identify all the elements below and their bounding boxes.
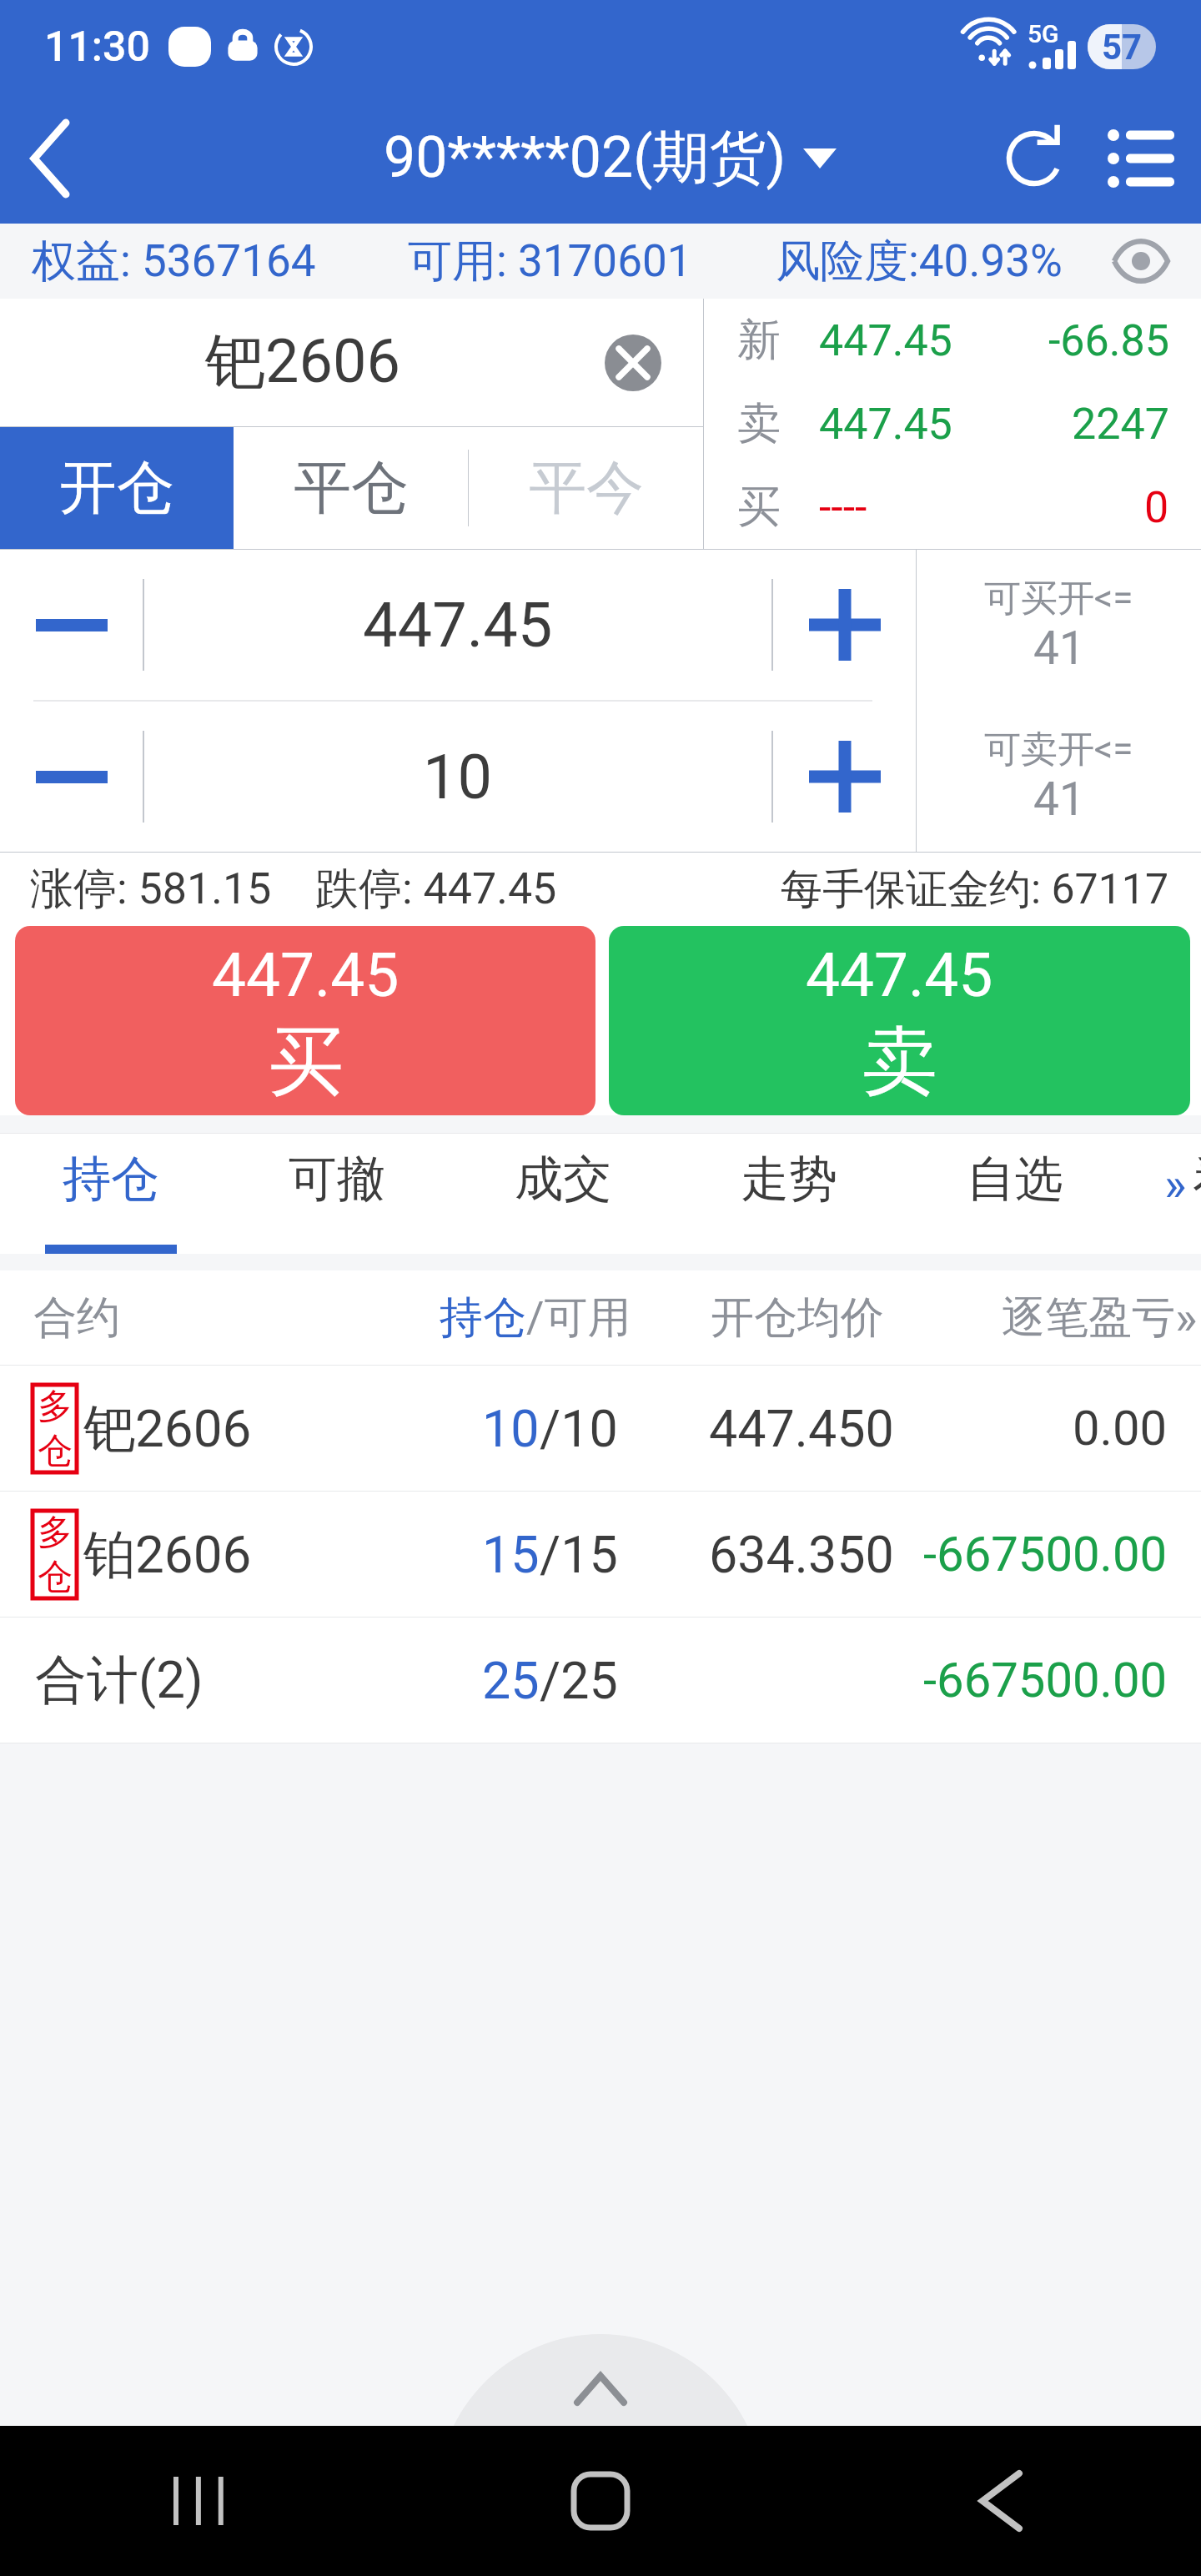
button[interactable]: 平仓	[234, 427, 468, 549]
staticText: 5G	[1028, 19, 1059, 48]
staticText: 买	[269, 1014, 344, 1109]
staticText: 447.450	[709, 1399, 894, 1458]
staticText: 卖	[737, 396, 781, 451]
button[interactable]: Expand panel	[437, 2334, 764, 2576]
staticText: 持仓	[440, 1291, 526, 1346]
button[interactable]: 90*****02(期货)	[384, 123, 837, 194]
staticText: /10	[540, 1399, 618, 1458]
button[interactable]: 走势	[701, 1134, 877, 1254]
staticText: 钯2606	[205, 325, 400, 400]
staticText: /15	[540, 1525, 618, 1584]
staticText: -66.85	[1048, 315, 1169, 366]
button[interactable]: Back	[0, 93, 108, 224]
button[interactable]: Refresh	[984, 93, 1088, 224]
staticText: 可用: 3170601	[408, 234, 692, 289]
button[interactable]: 合计(2)	[0, 1618, 1201, 1743]
button[interactable]: Back	[801, 2426, 1201, 2576]
button[interactable]: Clear contract	[605, 335, 661, 391]
staticText: 447.45	[363, 589, 553, 662]
staticText: 自选	[967, 1149, 1063, 1210]
button[interactable]: 多	[0, 1492, 1201, 1617]
staticText: 可卖开<=	[984, 727, 1133, 772]
staticText: 可买开<=	[984, 576, 1133, 621]
staticText: 447.45	[212, 939, 399, 1011]
button[interactable]: Home	[400, 2426, 801, 2576]
staticText: 买	[737, 480, 781, 535]
staticText: 41	[1033, 621, 1085, 675]
staticText: 卖	[862, 1014, 937, 1109]
staticText: »	[1175, 1291, 1198, 1346]
button[interactable]: 持仓	[23, 1134, 198, 1254]
staticText: /可用	[526, 1291, 631, 1346]
staticText: 铂2606	[83, 1522, 252, 1587]
staticText: 风险度:40.93%	[776, 234, 1063, 289]
staticText: 合约	[33, 1291, 120, 1346]
button[interactable]: 看板	[1153, 1134, 1201, 1254]
button[interactable]: Toggle amount visibility	[1109, 234, 1173, 289]
staticText: 0	[1144, 482, 1169, 533]
staticText: 每手保证金约: 67117	[781, 863, 1169, 916]
staticText: 10	[423, 741, 493, 813]
staticText: 新	[737, 313, 781, 368]
staticText: 多	[38, 1385, 73, 1429]
button[interactable]: 447.45	[15, 926, 595, 1115]
staticText: 0.00	[1073, 1400, 1168, 1457]
staticText: 平今	[529, 452, 644, 525]
staticText: 仓	[38, 1555, 73, 1598]
staticText: 447.45	[819, 399, 952, 450]
staticText: 41	[1033, 772, 1085, 826]
staticText: 开仓	[59, 452, 174, 525]
staticText: 涨停: 581.15	[30, 862, 272, 917]
staticText: 持仓	[63, 1149, 159, 1210]
staticText: 447.45	[806, 939, 993, 1011]
staticText: 跌停: 447.45	[315, 862, 557, 917]
button[interactable]: 成交	[475, 1134, 651, 1254]
button[interactable]: 多	[0, 1366, 1201, 1491]
button[interactable]: 447.45	[609, 926, 1190, 1115]
staticText: 看板	[1193, 1149, 1201, 1210]
staticText: 合计(2)	[35, 1648, 204, 1713]
staticText: 11:30	[44, 23, 150, 72]
staticText: 可撤	[289, 1149, 385, 1210]
staticText: 钯2606	[83, 1396, 252, 1462]
button[interactable]: 可撤	[249, 1134, 425, 1254]
button[interactable]: 平今	[469, 427, 703, 549]
button[interactable]: Decrease	[0, 550, 143, 700]
staticText: 开仓均价	[711, 1291, 884, 1346]
staticText: -667500.00	[923, 1526, 1168, 1582]
staticText: 90*****02(期货)	[384, 123, 786, 194]
button[interactable]: 自选	[927, 1134, 1103, 1254]
staticText: 2247	[1072, 399, 1169, 450]
staticText: ----	[819, 482, 867, 533]
staticText: 25	[482, 1651, 540, 1710]
button[interactable]: Increase	[773, 702, 916, 852]
button[interactable]: Recent apps	[0, 2426, 400, 2576]
staticText: 10	[482, 1399, 540, 1458]
button[interactable]: Decrease	[0, 702, 143, 852]
staticText: 走势	[741, 1149, 837, 1210]
staticText: 仓	[38, 1429, 73, 1472]
staticText: 447.45	[819, 315, 952, 366]
staticText: 逐笔盈亏	[1002, 1291, 1175, 1346]
staticText: /25	[540, 1651, 618, 1710]
staticText: 57	[1102, 27, 1143, 68]
staticText: 多	[38, 1511, 73, 1555]
staticText: 634.350	[709, 1525, 894, 1584]
staticText: -667500.00	[923, 1652, 1168, 1708]
staticText: »	[1164, 1157, 1187, 1212]
button[interactable]: Increase	[773, 550, 916, 700]
staticText: 15	[482, 1525, 540, 1584]
staticText: 成交	[515, 1149, 611, 1210]
staticText: 平仓	[294, 452, 409, 525]
button[interactable]: 开仓	[0, 427, 234, 549]
staticText: 权益: 5367164	[32, 234, 316, 289]
button[interactable]: Menu	[1093, 93, 1193, 224]
